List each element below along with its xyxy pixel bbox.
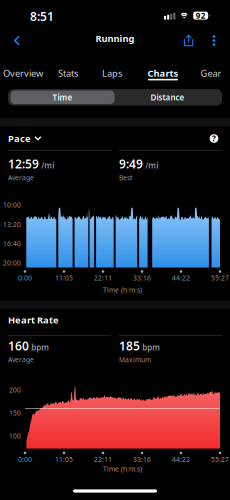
staticText: 55:27 bbox=[211, 455, 229, 464]
staticText: /mi bbox=[145, 160, 158, 171]
staticText: Distance bbox=[150, 92, 184, 103]
button[interactable]: Heart Rate bbox=[8, 313, 88, 327]
staticText: 100 bbox=[9, 432, 21, 440]
staticText: 11:05 bbox=[55, 274, 73, 282]
button[interactable]: Time bbox=[10, 90, 114, 104]
staticText: /mi bbox=[41, 160, 54, 171]
button[interactable]: About Pace bbox=[206, 130, 222, 146]
staticText: 44:22 bbox=[172, 455, 190, 464]
staticText: Charts bbox=[147, 67, 178, 79]
staticText: ? bbox=[212, 133, 216, 144]
staticText: 0:00 bbox=[18, 455, 32, 464]
staticText: 13:20 bbox=[3, 220, 21, 229]
button[interactable]: Back bbox=[4, 28, 30, 54]
staticText: bpm bbox=[142, 342, 160, 353]
staticText: Overview bbox=[3, 67, 43, 79]
staticText: bpm bbox=[31, 342, 49, 353]
staticText: 11:05 bbox=[55, 455, 73, 464]
staticText: Heart Rate bbox=[8, 314, 59, 326]
staticText: 22:11 bbox=[94, 455, 112, 464]
staticText: 160 bbox=[8, 338, 29, 354]
staticText: 9:49 bbox=[119, 156, 143, 172]
staticText: 12:59 bbox=[8, 156, 39, 172]
button[interactable]: Charts bbox=[140, 67, 186, 91]
staticText: 20:00 bbox=[3, 258, 21, 267]
staticText: Average bbox=[8, 355, 34, 364]
staticText: 8:51 bbox=[30, 8, 54, 24]
button[interactable]: Distance bbox=[115, 90, 219, 104]
staticText: 16:40 bbox=[3, 239, 21, 248]
staticText: Running bbox=[95, 32, 134, 45]
button[interactable]: Gear bbox=[188, 67, 230, 91]
button[interactable]: Laps bbox=[89, 67, 135, 91]
staticText: 22:11 bbox=[94, 274, 112, 282]
staticText: Time bbox=[52, 92, 72, 103]
staticText: 0:00 bbox=[18, 274, 32, 282]
staticText: Maximum bbox=[119, 355, 151, 364]
staticText: Gear bbox=[200, 67, 221, 79]
staticText: 55:27 bbox=[211, 274, 229, 282]
button[interactable]: Share bbox=[177, 27, 201, 53]
staticText: 185 bbox=[119, 338, 140, 354]
staticText: 200 bbox=[9, 386, 21, 394]
staticText: Pace bbox=[8, 132, 31, 145]
staticText: 44:22 bbox=[172, 274, 190, 282]
staticText: 10:00 bbox=[3, 201, 21, 209]
button[interactable]: Overview bbox=[0, 67, 46, 91]
staticText: Stats bbox=[58, 67, 78, 79]
button[interactable]: Stats bbox=[45, 67, 91, 91]
staticText: Time (h:m:s) bbox=[103, 286, 142, 294]
staticText: 33:16 bbox=[133, 274, 151, 282]
staticText: 92 bbox=[196, 10, 206, 21]
button[interactable]: More options bbox=[204, 28, 224, 54]
staticText: Average bbox=[8, 173, 34, 182]
staticText: Laps bbox=[102, 67, 122, 79]
staticText: 150 bbox=[9, 409, 21, 417]
staticText: 33:16 bbox=[133, 455, 151, 464]
staticText: Best bbox=[119, 173, 132, 182]
staticText: Time (h:m:s) bbox=[103, 465, 142, 473]
button[interactable]: Pace bbox=[8, 131, 88, 145]
